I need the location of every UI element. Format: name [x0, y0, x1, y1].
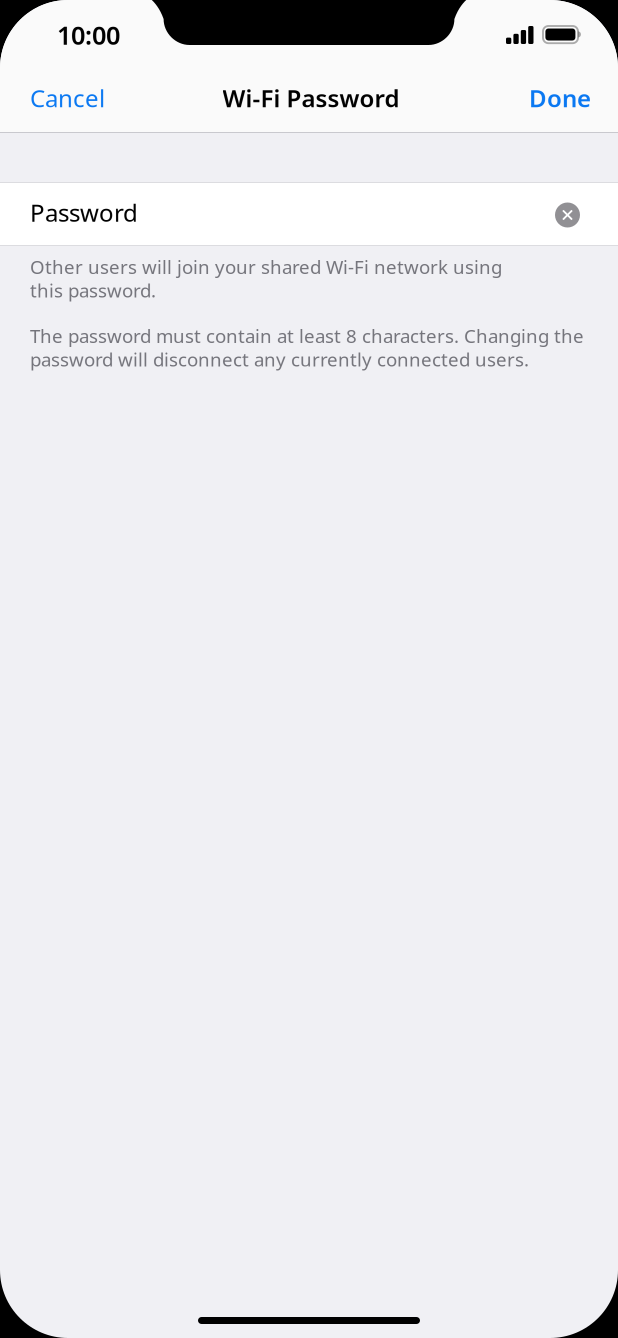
staticText: password will disconnect any currently c… — [30, 347, 529, 372]
staticText: Password — [30, 197, 138, 228]
staticText: Cancel — [30, 82, 105, 114]
staticText: 10:00 — [57, 18, 120, 52]
button[interactable]: Done — [521, 69, 599, 127]
staticText: Wi-Fi Password — [222, 82, 399, 114]
staticText: Done — [529, 82, 591, 114]
staticText: Other users will join your shared Wi‑Fi … — [30, 254, 502, 279]
staticText: this password. — [30, 278, 156, 303]
staticText: The password must contain at least 8 cha… — [30, 323, 584, 348]
button[interactable]: Clear password — [541, 183, 618, 245]
button[interactable]: Password — [0, 183, 618, 245]
button[interactable]: Cancel — [22, 69, 113, 127]
